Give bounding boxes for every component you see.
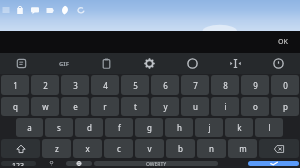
- button[interactable]: 9: [241, 75, 269, 95]
- button[interactable]: Sticker: [0, 53, 42, 74]
- button[interactable]: p: [271, 97, 299, 116]
- button[interactable]: b: [166, 139, 195, 158]
- button[interactable]: f: [105, 118, 133, 137]
- button[interactable]: k: [225, 118, 253, 137]
- button[interactable]: g: [135, 118, 163, 137]
- button[interactable]: 2: [31, 75, 59, 95]
- button[interactable]: Backspace: [259, 139, 299, 158]
- button[interactable]: w: [31, 97, 59, 116]
- button[interactable]: OK: [274, 35, 292, 49]
- staticText: c: [117, 143, 121, 154]
- button[interactable]: 6: [151, 75, 179, 95]
- staticText: r: [103, 101, 107, 112]
- staticText: v: [147, 143, 152, 154]
- button[interactable]: u: [181, 97, 209, 116]
- staticText: h: [177, 122, 182, 133]
- staticText: s: [57, 122, 61, 133]
- button[interactable]: a: [16, 118, 43, 137]
- button[interactable]: 3: [61, 75, 89, 95]
- staticText: d: [87, 122, 92, 133]
- button[interactable]: x: [73, 139, 102, 158]
- staticText: a: [27, 122, 32, 133]
- staticText: w: [42, 101, 49, 112]
- staticText: z: [55, 143, 59, 154]
- button[interactable]: h: [165, 118, 193, 137]
- staticText: 8: [223, 80, 228, 91]
- button[interactable]: n: [197, 139, 226, 158]
- staticText: e: [73, 101, 78, 112]
- button[interactable]: GIF: [42, 53, 85, 74]
- button[interactable]: 123: [1, 161, 36, 166]
- button[interactable]: Clipboard: [85, 53, 128, 74]
- staticText: x: [85, 143, 90, 154]
- button[interactable]: Change language: [66, 161, 92, 166]
- button[interactable]: e: [61, 97, 89, 116]
- button[interactable]: s: [45, 118, 73, 137]
- button[interactable]: Text editing: [214, 53, 257, 74]
- button[interactable]: m: [228, 139, 257, 158]
- staticText: 9: [253, 80, 258, 91]
- button[interactable]: y: [151, 97, 179, 116]
- staticText: o: [253, 101, 258, 112]
- button[interactable]: j: [195, 118, 223, 137]
- staticText: OK: [278, 37, 288, 47]
- staticText: 123: [12, 161, 25, 166]
- staticText: n: [209, 143, 214, 154]
- button[interactable]: d: [75, 118, 103, 137]
- button[interactable]: Enter: [248, 161, 299, 166]
- staticText: 1: [13, 80, 18, 91]
- button[interactable]: 8: [211, 75, 239, 95]
- button[interactable]: l: [255, 118, 283, 137]
- button[interactable]: q: [1, 97, 29, 116]
- button[interactable]: v: [135, 139, 164, 158]
- staticText: 0: [283, 80, 288, 91]
- staticText: 2: [43, 80, 48, 91]
- button[interactable]: 0: [271, 75, 299, 95]
- button[interactable]: Settings: [128, 53, 171, 74]
- button[interactable]: Shift: [1, 139, 40, 158]
- staticText: j: [208, 122, 211, 133]
- staticText: g: [147, 122, 152, 133]
- staticText: 3: [73, 80, 78, 91]
- staticText: t: [134, 101, 137, 112]
- staticText: k: [237, 122, 242, 133]
- staticText: l: [268, 122, 271, 133]
- staticText: 6: [163, 80, 168, 91]
- button[interactable]: QWERTY: [94, 161, 218, 166]
- staticText: QWERTY: [146, 161, 167, 166]
- button[interactable]: 4: [91, 75, 119, 95]
- button[interactable]: More: [257, 53, 300, 74]
- button[interactable]: 1: [1, 75, 29, 95]
- button[interactable]: r: [91, 97, 119, 116]
- staticText: i: [224, 101, 227, 112]
- staticText: GIF: [59, 60, 69, 68]
- staticText: m: [239, 143, 247, 154]
- button[interactable]: Emoji: [38, 161, 64, 166]
- staticText: b: [178, 143, 183, 154]
- staticText: p: [283, 101, 288, 112]
- staticText: y: [163, 101, 168, 112]
- button[interactable]: z: [42, 139, 71, 158]
- staticText: q: [13, 101, 18, 112]
- staticText: 7: [193, 80, 198, 91]
- button[interactable]: 7: [181, 75, 209, 95]
- staticText: f: [118, 122, 121, 133]
- button[interactable]: c: [104, 139, 133, 158]
- button[interactable]: o: [241, 97, 269, 116]
- button[interactable]: Theme: [171, 53, 214, 74]
- staticText: 5: [133, 80, 138, 91]
- staticText: 4: [103, 80, 108, 91]
- button[interactable]: i: [211, 97, 239, 116]
- button[interactable]: 5: [121, 75, 149, 95]
- button[interactable]: t: [121, 97, 149, 116]
- staticText: u: [193, 101, 198, 112]
